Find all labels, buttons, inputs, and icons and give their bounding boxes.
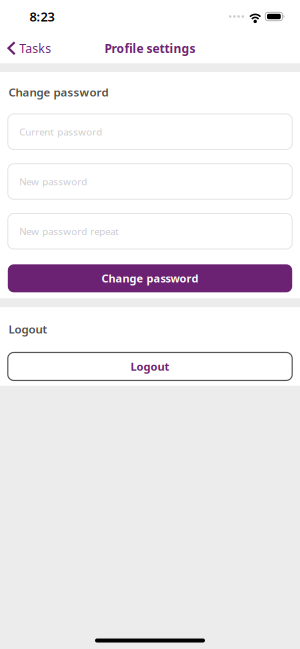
staticText: New password — [19, 175, 87, 188]
staticText: Change password — [8, 84, 108, 100]
button[interactable]: Tasks — [0, 33, 59, 63]
button[interactable]: Change password — [0, 249, 300, 298]
staticText: Tasks — [19, 40, 51, 56]
button[interactable]: Logout — [0, 352, 300, 386]
staticText: Logout — [130, 359, 169, 374]
staticText: Logout — [8, 321, 47, 337]
staticText: Current password — [19, 125, 102, 138]
staticText: 8:23 — [29, 8, 54, 25]
staticText: New password repeat — [19, 225, 119, 238]
staticText: Profile settings — [104, 40, 195, 56]
staticText: Change password — [101, 271, 198, 286]
